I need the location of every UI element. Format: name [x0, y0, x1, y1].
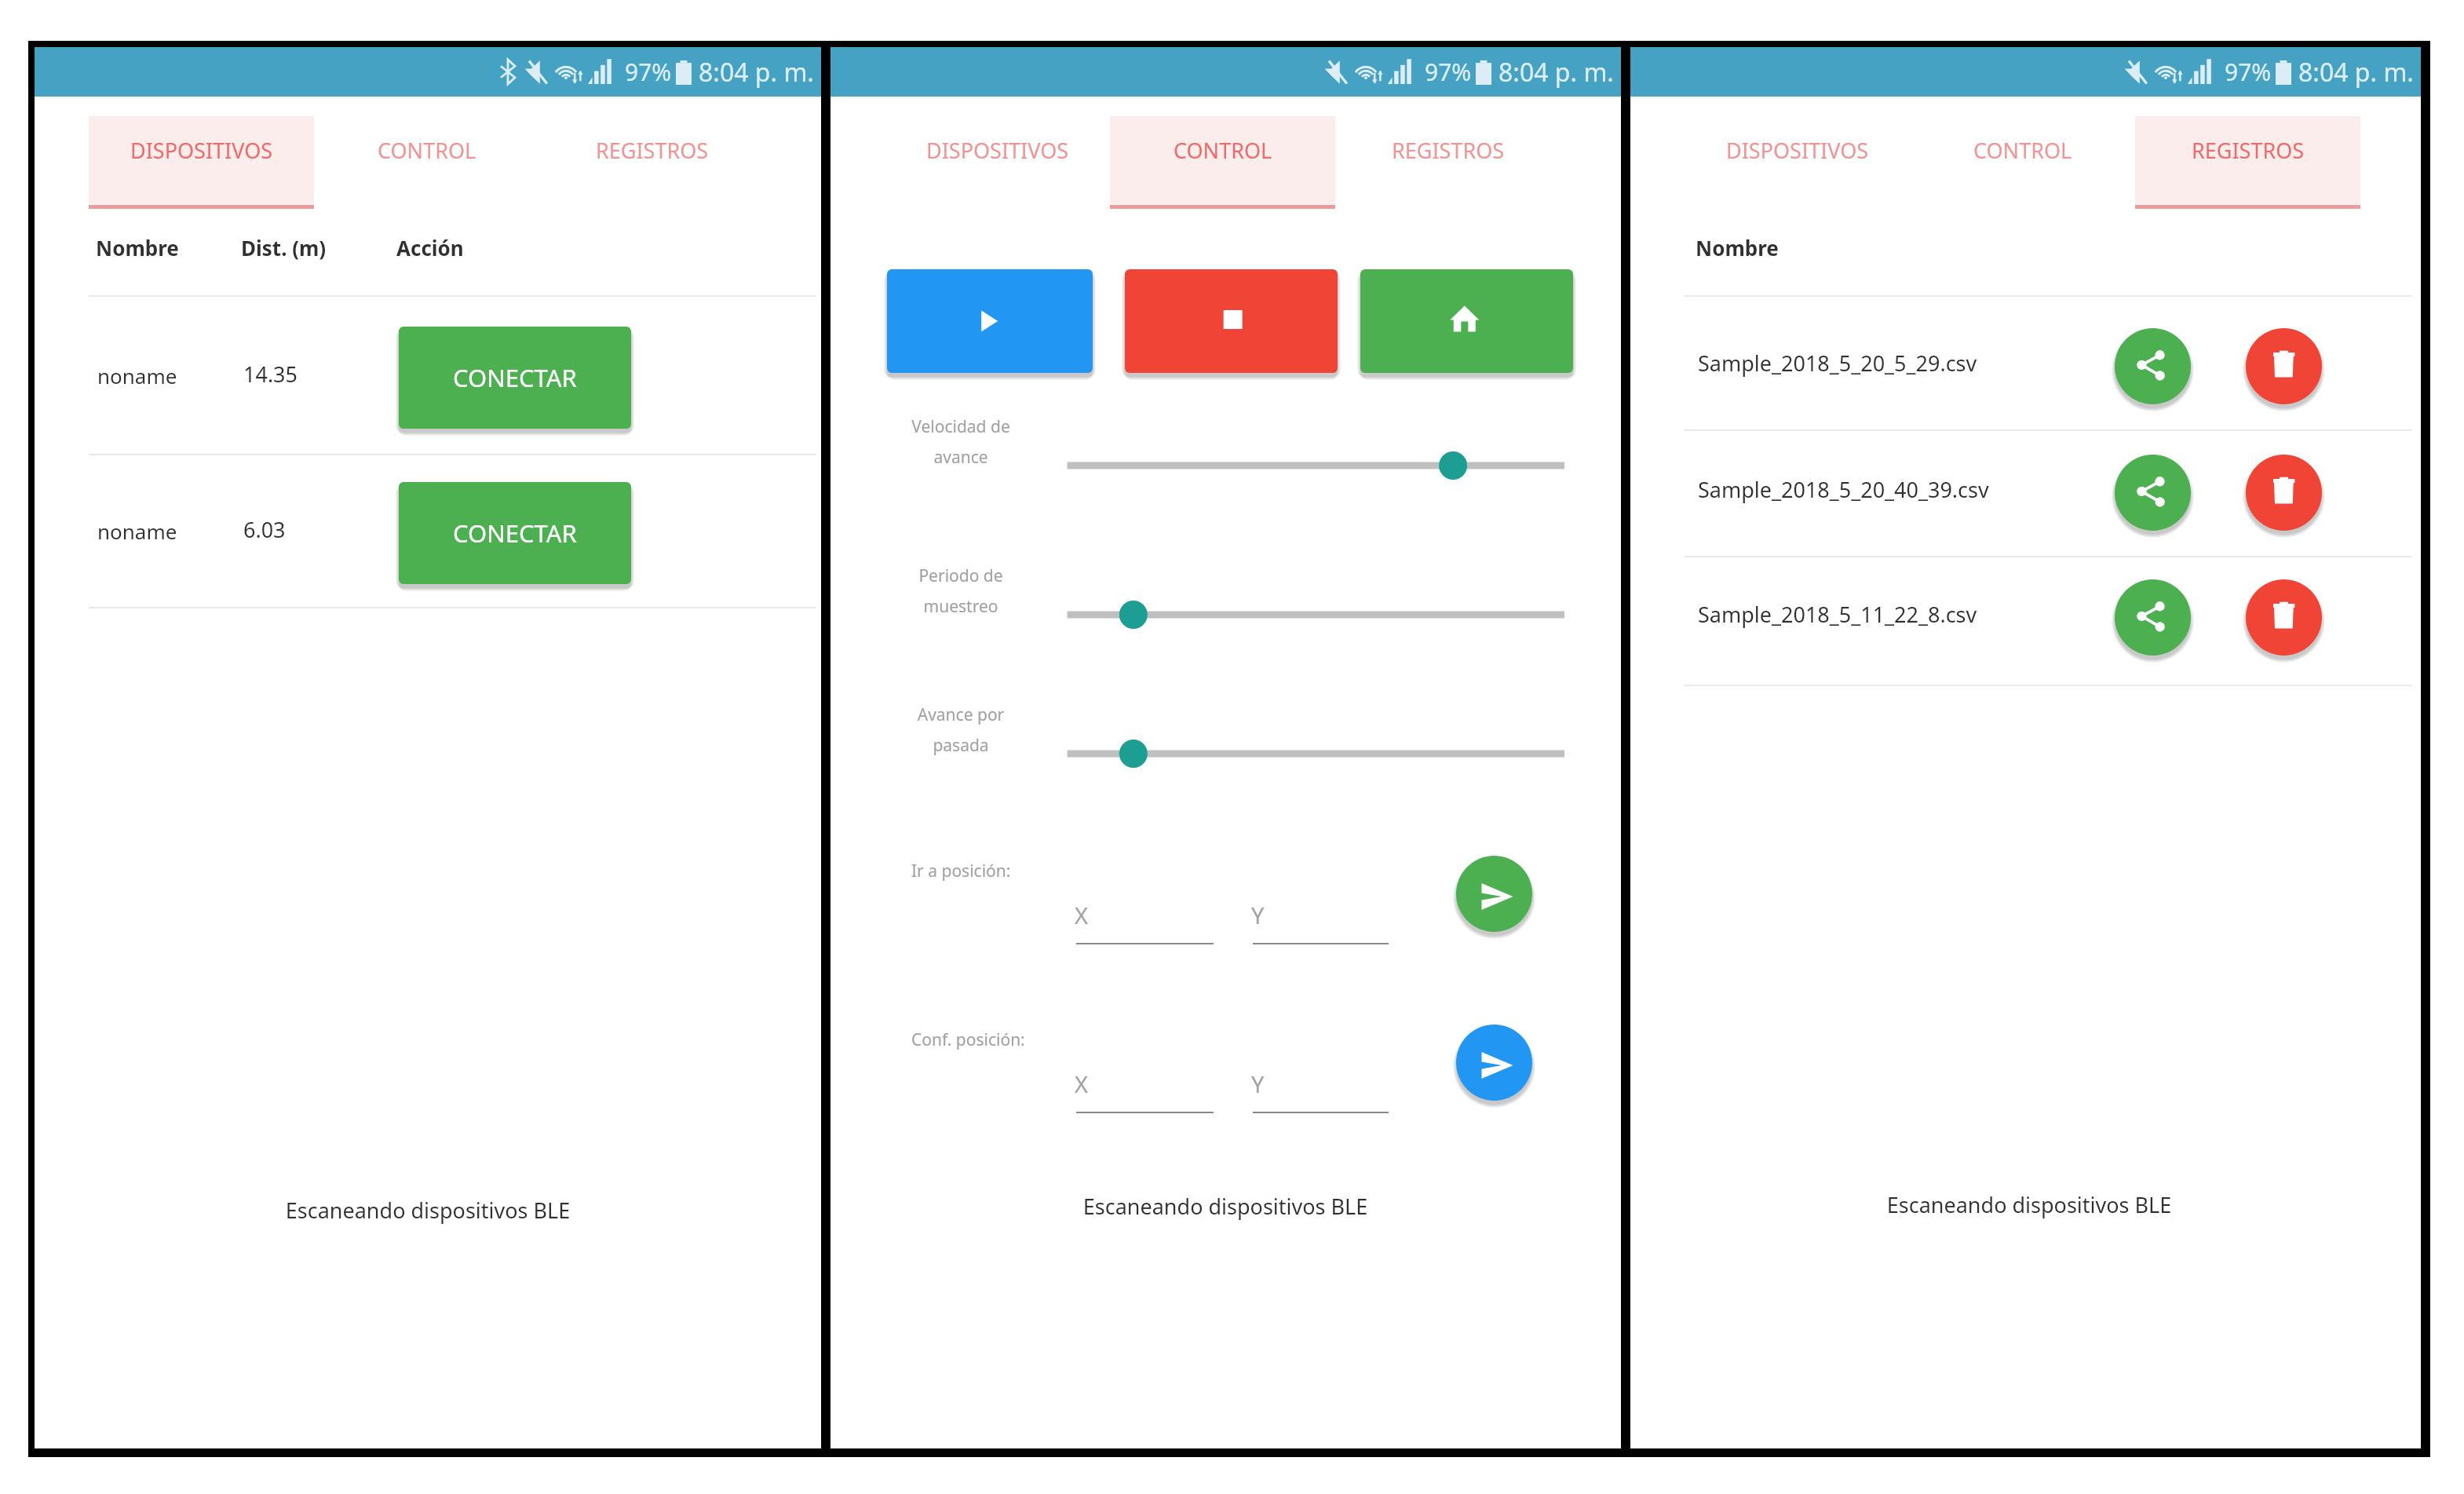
- staticText: Nombre: [1696, 234, 1779, 261]
- staticText: 8:04 p. m.: [1498, 55, 1614, 89]
- button[interactable]: REGISTROS: [2135, 116, 2360, 210]
- button[interactable]: Detener: [1125, 269, 1338, 373]
- button[interactable]: DISPOSITIVOS: [89, 116, 314, 210]
- staticText: REGISTROS: [2192, 136, 2305, 165]
- staticText: 8:04 p. m.: [2298, 55, 2414, 89]
- button[interactable]: CONECTAR: [399, 327, 631, 429]
- staticText: CONECTAR: [453, 361, 577, 394]
- staticText: noname: [97, 517, 177, 545]
- button[interactable]: REGISTROS: [539, 116, 765, 210]
- button[interactable]: CONTROL: [314, 116, 539, 210]
- staticText: Periodo de: [725, 564, 1196, 587]
- staticText: CONTROL: [378, 136, 476, 165]
- button[interactable]: Campo X: [1076, 1061, 1214, 1112]
- staticText: pasada: [725, 734, 1196, 757]
- staticText: 8:04 p. m.: [699, 55, 814, 89]
- button[interactable]: REGISTROS: [1335, 116, 1561, 210]
- staticText: avance: [725, 446, 1196, 469]
- staticText: Ir a posición:: [911, 860, 1011, 882]
- staticText: Dist. (m): [241, 234, 327, 261]
- staticText: CONECTAR: [453, 517, 577, 550]
- button[interactable]: Enviar: [1456, 1025, 1532, 1101]
- staticText: Escaneando dispositivos BLE: [1794, 1190, 2265, 1219]
- staticText: 97%: [2225, 56, 2272, 88]
- staticText: X: [1075, 1068, 1088, 1099]
- button[interactable]: Eliminar: [2246, 579, 2322, 656]
- staticText: noname: [97, 362, 177, 389]
- button[interactable]: Ajustar: [1050, 730, 1584, 777]
- staticText: Escaneando dispositivos BLE: [192, 1196, 663, 1225]
- staticText: CONTROL: [1973, 136, 2072, 165]
- button[interactable]: Enviar: [1456, 856, 1532, 932]
- staticText: REGISTROS: [596, 136, 709, 165]
- staticText: DISPOSITIVOS: [926, 136, 1069, 165]
- button[interactable]: Reproducir: [887, 269, 1093, 373]
- staticText: Avance por: [725, 703, 1196, 726]
- button[interactable]: CONECTAR: [399, 482, 631, 584]
- staticText: muestreo: [725, 595, 1196, 618]
- staticText: Sample_2018_5_20_5_29.csv: [1698, 349, 1977, 378]
- staticText: Acción: [396, 234, 464, 261]
- staticText: Sample_2018_5_20_40_39.csv: [1698, 475, 1989, 504]
- button[interactable]: Compartir: [2115, 579, 2191, 656]
- button[interactable]: DISPOSITIVOS: [1685, 116, 1910, 210]
- button[interactable]: Ajustar: [1050, 591, 1584, 638]
- staticText: CONTROL: [1174, 136, 1272, 165]
- staticText: Y: [1251, 900, 1265, 930]
- staticText: Escaneando dispositivos BLE: [990, 1192, 1461, 1221]
- button[interactable]: Ajustar: [1050, 442, 1584, 489]
- staticText: Velocidad de: [725, 415, 1196, 438]
- staticText: 14.35: [243, 360, 298, 389]
- staticText: REGISTROS: [1392, 136, 1505, 165]
- button[interactable]: Eliminar: [2246, 455, 2322, 531]
- staticText: Nombre: [96, 234, 179, 261]
- button[interactable]: Compartir: [2115, 455, 2191, 531]
- staticText: 6.03: [243, 515, 286, 544]
- button[interactable]: Eliminar: [2246, 328, 2322, 404]
- button[interactable]: Inicio: [1360, 269, 1573, 373]
- staticText: 97%: [1425, 56, 1472, 88]
- staticText: Y: [1251, 1068, 1265, 1099]
- button[interactable]: CONTROL: [1110, 116, 1335, 210]
- button[interactable]: DISPOSITIVOS: [885, 116, 1110, 210]
- staticText: Sample_2018_5_11_22_8.csv: [1698, 600, 1977, 629]
- button[interactable]: CONTROL: [1910, 116, 2135, 210]
- button[interactable]: Campo Y: [1253, 893, 1389, 943]
- button[interactable]: Compartir: [2115, 328, 2191, 404]
- staticText: 97%: [625, 56, 672, 88]
- button[interactable]: Campo Y: [1253, 1061, 1389, 1112]
- staticText: DISPOSITIVOS: [130, 136, 273, 165]
- button[interactable]: Campo X: [1076, 893, 1214, 943]
- staticText: DISPOSITIVOS: [1726, 136, 1869, 165]
- staticText: Conf. posición:: [911, 1028, 1025, 1051]
- staticText: X: [1075, 900, 1088, 930]
